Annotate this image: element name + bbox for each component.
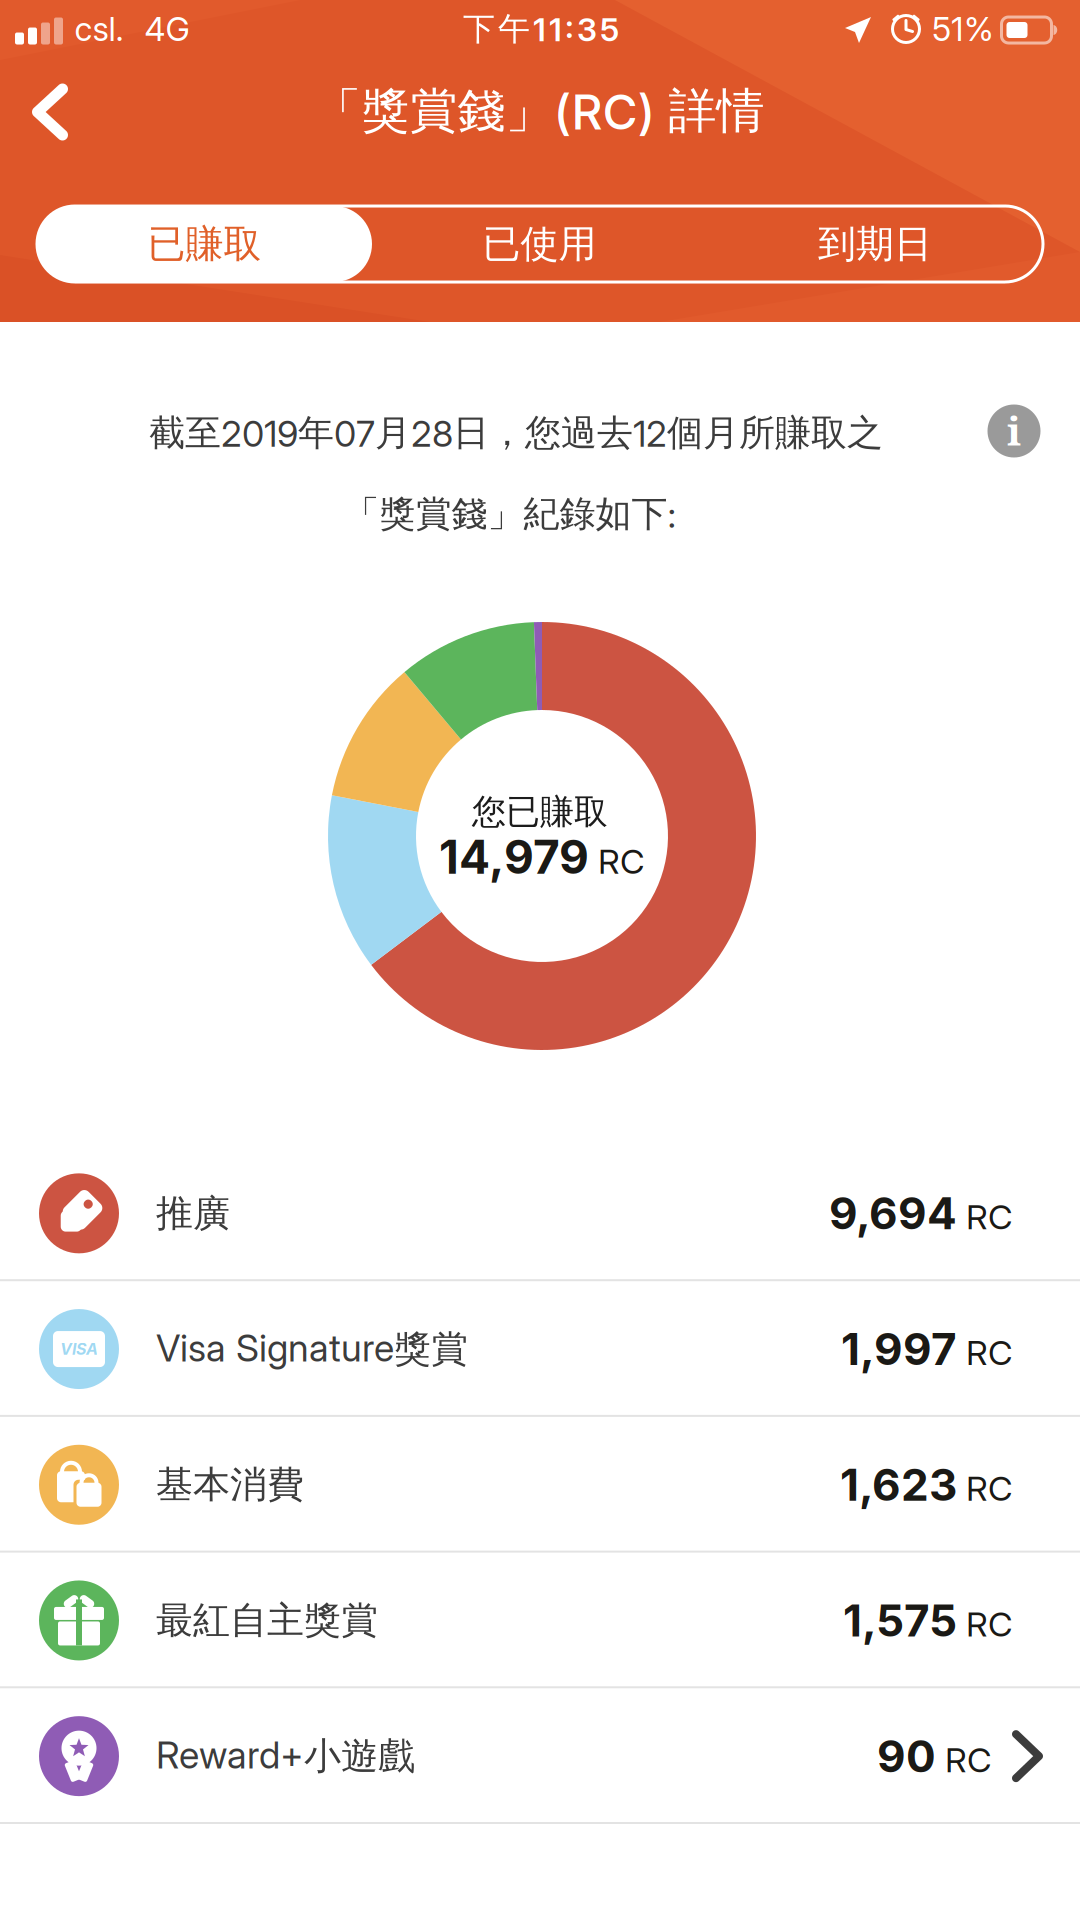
staticText: 已賺取 — [147, 220, 261, 268]
staticText: 90 RC — [877, 1730, 992, 1782]
staticText: 9,694 RC — [829, 1187, 1013, 1239]
staticText: 14,979 RC — [439, 830, 645, 884]
staticText: 下午11:35 — [463, 9, 619, 49]
button[interactable]: Reward+小遊戲 — [0, 1688, 1080, 1824]
staticText: csl. — [74, 9, 123, 49]
staticText: 您已賺取 — [472, 791, 608, 833]
button[interactable]: 已使用 — [372, 206, 707, 282]
staticText: 已使用 — [482, 220, 596, 268]
staticText: i — [1007, 403, 1021, 457]
staticText: 51% — [932, 9, 994, 49]
staticText: 「獎賞錢」(RC) 詳情 — [313, 81, 764, 141]
button[interactable]: 資訊 — [987, 404, 1040, 458]
staticText: 推廣 — [156, 1190, 230, 1237]
button[interactable]: 到期日 — [707, 206, 1043, 282]
staticText: 4G — [144, 9, 189, 49]
button[interactable]: 已賺取 — [37, 206, 372, 282]
staticText: Reward+小遊戲 — [156, 1733, 415, 1779]
staticText: 最紅自主獎賞 — [156, 1597, 378, 1644]
button[interactable]: VISA — [0, 1281, 1080, 1417]
staticText: VISA — [60, 1339, 98, 1359]
staticText: 基本消費 — [156, 1461, 304, 1508]
staticText: 1,575 RC — [843, 1594, 1013, 1646]
staticText: 截至2019年07月28日，您過去12個月所賺取之 — [149, 410, 883, 456]
button[interactable]: 推廣 — [0, 1145, 1080, 1281]
staticText: 1,997 RC — [841, 1323, 1013, 1375]
staticText: 「獎賞錢」紀錄如下: — [343, 491, 676, 537]
staticText: Visa Signature獎賞 — [156, 1326, 468, 1372]
staticText: 到期日 — [818, 220, 932, 268]
button[interactable]: 基本消費 — [0, 1417, 1080, 1553]
staticText: 1,623 RC — [840, 1459, 1013, 1511]
button[interactable]: 最紅自主獎賞 — [0, 1553, 1080, 1688]
button[interactable]: 返回 — [21, 75, 78, 149]
